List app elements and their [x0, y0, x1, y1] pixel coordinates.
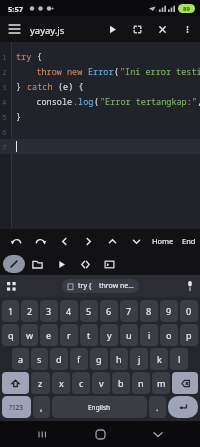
staticText: .log: [73, 96, 94, 108]
button[interactable]: v: [92, 372, 110, 394]
button[interactable]: Undo: [4, 229, 28, 253]
button[interactable]: Enter: [168, 396, 198, 418]
staticText: p: [186, 329, 192, 341]
button[interactable]: o: [160, 324, 178, 346]
button[interactable]: y: [100, 324, 118, 346]
button[interactable]: s: [31, 348, 48, 370]
button[interactable]: Menu: [4, 19, 24, 39]
button[interactable]: n: [132, 372, 150, 394]
button[interactable]: ,: [33, 396, 50, 418]
button[interactable]: a: [12, 348, 29, 370]
staticText: j: [138, 353, 141, 365]
button[interactable]: p: [180, 324, 198, 346]
staticText: g: [96, 353, 102, 365]
button[interactable]: 4: [60, 300, 78, 322]
staticText: }: [16, 81, 27, 93]
button[interactable]: f: [70, 348, 88, 370]
button[interactable]: Right: [76, 229, 100, 253]
button[interactable]: 9: [160, 300, 178, 322]
button[interactable]: 2: [21, 300, 38, 322]
button[interactable]: .: [149, 396, 166, 418]
button[interactable]: x: [52, 372, 70, 394]
button[interactable]: Home: [85, 421, 115, 447]
button[interactable]: try {: [62, 279, 139, 293]
staticText: {: [37, 51, 43, 63]
staticText: catch: [27, 81, 58, 93]
button[interactable]: i: [140, 324, 158, 346]
button[interactable]: Edit: [3, 255, 25, 273]
staticText: 6: [106, 305, 112, 317]
button[interactable]: Code: [73, 253, 97, 275]
button[interactable]: b: [112, 372, 130, 394]
button[interactable]: Backspace: [172, 372, 198, 394]
staticText: }: [16, 111, 22, 123]
staticText: 5: [86, 305, 92, 317]
staticText: w: [26, 329, 34, 341]
button[interactable]: z: [31, 372, 50, 394]
button[interactable]: m: [152, 372, 170, 394]
staticText: i: [148, 329, 151, 341]
staticText: q: [8, 329, 14, 341]
button[interactable]: 6: [100, 300, 118, 322]
button[interactable]: Files: [25, 253, 49, 275]
button[interactable]: 3: [40, 300, 58, 322]
button[interactable]: End: [178, 236, 200, 246]
staticText: .: [156, 401, 159, 413]
button[interactable]: Close: [150, 16, 175, 42]
staticText: 3: [2, 82, 7, 92]
button[interactable]: Back: [143, 421, 173, 447]
staticText: e: [46, 329, 52, 341]
button[interactable]: 8: [140, 300, 158, 322]
button[interactable]: t: [80, 324, 98, 346]
button[interactable]: g: [90, 348, 108, 370]
button[interactable]: Run: [100, 16, 125, 42]
button[interactable]: Shift: [2, 372, 29, 394]
staticText: 5: [2, 112, 7, 122]
staticText: t: [87, 329, 91, 341]
button[interactable]: English: [52, 396, 147, 418]
button[interactable]: u: [120, 324, 138, 346]
button[interactable]: h: [110, 348, 128, 370]
staticText: 5:57: [8, 4, 23, 14]
button[interactable]: 7: [120, 300, 138, 322]
button[interactable]: Home: [148, 236, 178, 246]
button[interactable]: Fullscreen: [125, 16, 150, 42]
button[interactable]: Redo: [28, 229, 52, 253]
button[interactable]: 5: [80, 300, 98, 322]
staticText: English: [88, 403, 111, 412]
staticText: r: [67, 329, 71, 341]
button[interactable]: More options: [175, 16, 200, 42]
button[interactable]: l: [170, 348, 188, 370]
button[interactable]: ?123: [2, 396, 31, 418]
button[interactable]: Up: [100, 229, 124, 253]
button[interactable]: Run file: [49, 253, 73, 275]
staticText: y: [107, 329, 112, 341]
button[interactable]: Down: [124, 229, 148, 253]
button[interactable]: Left: [52, 229, 76, 253]
staticText: a: [18, 353, 24, 365]
staticText: k: [157, 353, 162, 365]
button[interactable]: Terminal: [97, 253, 121, 275]
staticText: Error: [88, 66, 114, 78]
staticText: 7: [126, 305, 132, 317]
staticText: (: [94, 96, 100, 108]
button[interactable]: 0: [180, 300, 198, 322]
button[interactable]: r: [60, 324, 78, 346]
button[interactable]: w: [21, 324, 38, 346]
button[interactable]: d: [50, 348, 68, 370]
button[interactable]: j: [130, 348, 148, 370]
button[interactable]: 1: [2, 300, 19, 322]
button[interactable]: Recents: [28, 421, 58, 447]
button[interactable]: k: [150, 348, 168, 370]
staticText: 9: [166, 305, 172, 317]
staticText: l: [178, 353, 181, 365]
staticText: 3: [46, 305, 52, 317]
button[interactable]: c: [72, 372, 90, 394]
staticText: yayay.js: [30, 24, 65, 37]
button[interactable]: Voice input: [187, 281, 193, 291]
staticText: z: [38, 377, 43, 389]
button[interactable]: e: [40, 324, 58, 346]
button[interactable]: q: [2, 324, 19, 346]
button[interactable]: Toolbar: [7, 282, 16, 291]
staticText: o: [166, 329, 172, 341]
